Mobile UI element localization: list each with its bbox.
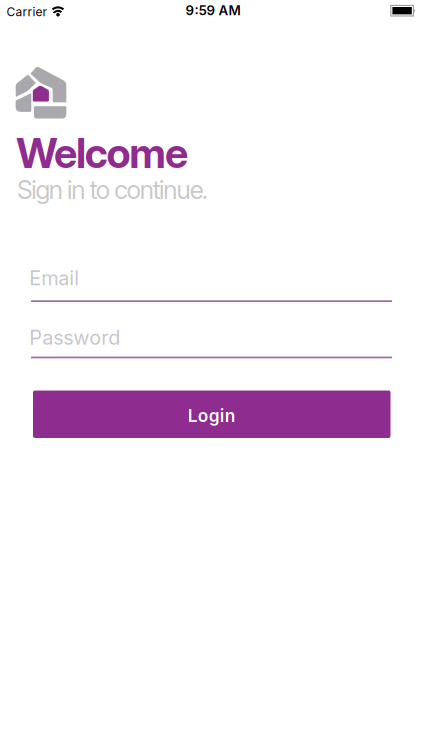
staticText: Welcome xyxy=(16,128,188,177)
button[interactable]: Password xyxy=(31,320,392,358)
button[interactable]: Email xyxy=(31,264,392,302)
button[interactable]: Login xyxy=(33,390,390,438)
staticText: Sign in to continue. xyxy=(17,175,209,205)
staticText: Password xyxy=(29,326,120,349)
staticText: Carrier xyxy=(6,5,47,19)
staticText: 9:59 AM xyxy=(185,3,240,18)
staticText: Email xyxy=(29,266,79,290)
staticText: Login xyxy=(188,405,236,426)
